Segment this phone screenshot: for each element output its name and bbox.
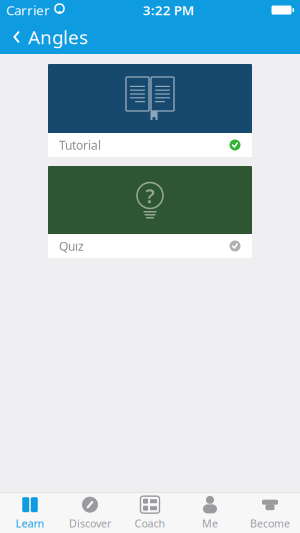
staticText: Tutorial [59,137,101,153]
staticText: Learn [15,516,44,530]
button[interactable]: Tutorial [48,64,252,157]
button[interactable]: Become [240,493,300,533]
staticText: Become [250,516,290,530]
staticText: Quiz [59,238,84,254]
button[interactable]: ? [48,166,252,258]
staticText: ? [145,182,154,209]
staticText: Coach [134,516,165,530]
staticText: Angles [28,25,88,49]
button[interactable]: Learn [0,493,60,533]
button[interactable]: Coach [120,493,180,533]
staticText: Carrier [6,1,50,19]
button[interactable]: Me [180,493,240,533]
staticText: Discover [69,516,111,530]
button[interactable]: Angles [0,20,98,54]
button[interactable]: Discover [60,493,120,533]
staticText: 3:22 PM [143,1,194,19]
staticText: Me [202,516,218,530]
